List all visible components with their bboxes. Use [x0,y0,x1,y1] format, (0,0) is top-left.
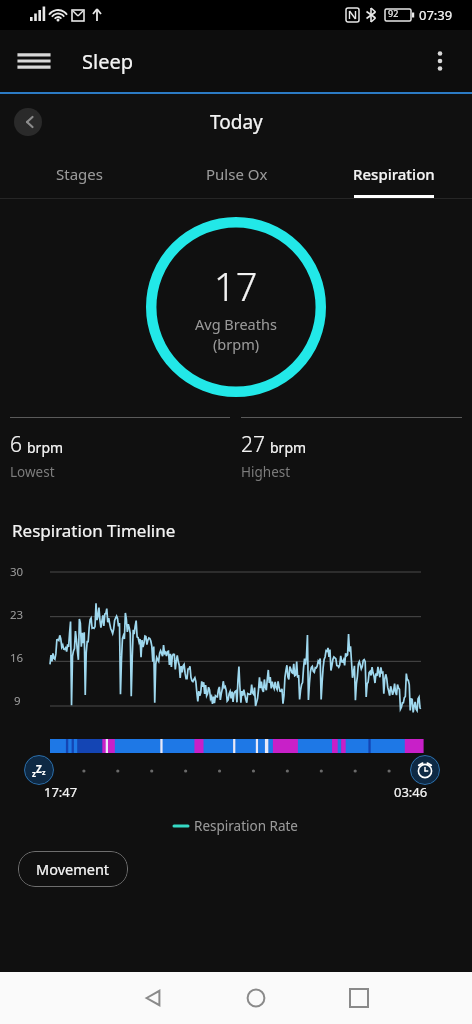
staticText: 23 [10,607,24,623]
button[interactable]: Open navigation menu [12,39,56,83]
staticText: z [42,768,46,778]
button[interactable]: Recent apps [307,972,410,1024]
staticText: (brpm) [213,334,260,354]
staticText: 16 [10,650,24,666]
staticText: Highest [241,463,291,481]
button[interactable]: 27 [241,417,462,481]
staticText: brpm [27,438,64,457]
button[interactable]: More options [418,39,462,83]
staticText: Z [36,762,42,776]
button[interactable]: Movement [18,851,128,887]
button[interactable]: 6 [10,417,230,481]
staticText: 17 [214,260,258,312]
button[interactable]: Sleep start [24,755,54,785]
staticText: 9 [14,693,21,709]
button[interactable]: Respiration [315,150,472,198]
button[interactable]: Back [102,972,204,1024]
staticText: Respiration Timeline [12,519,176,542]
staticText: Today [210,109,263,135]
staticText: 92 [388,7,399,19]
button[interactable]: Wake time alarm [410,755,440,785]
staticText: 30 [10,564,24,580]
staticText: 17:47 [44,783,78,801]
staticText: Sleep [82,48,133,75]
staticText: Avg Breaths [195,314,277,334]
staticText: z [32,768,36,779]
staticText: Respiration Rate [194,817,298,835]
staticText: Movement [36,859,110,879]
button[interactable]: Stages [0,150,158,198]
staticText: Lowest [10,463,55,481]
staticText: 27 [241,430,265,459]
staticText: Stages [56,164,103,184]
button[interactable]: Home [204,972,307,1024]
staticText: Pulse Ox [206,164,268,184]
staticText: 03:46 [394,783,428,801]
staticText: brpm [270,438,307,457]
staticText: Respiration [353,164,435,184]
staticText: 6 [10,430,22,459]
button[interactable]: Pulse Ox [158,150,315,198]
staticText: 07:39 [419,6,453,24]
button[interactable]: Previous day [14,108,42,136]
